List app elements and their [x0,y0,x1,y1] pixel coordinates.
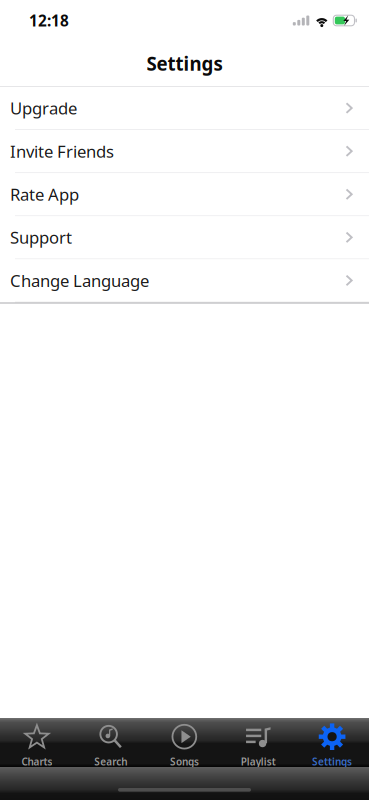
staticText: Invite Friends [10,140,114,162]
button[interactable]: Playlist [221,718,295,767]
staticText: Settings [312,755,352,768]
staticText: Songs [170,755,199,768]
button[interactable]: Search [74,718,148,767]
button[interactable]: Charts [0,718,74,767]
button[interactable]: Invite Friends [0,130,369,173]
staticText: Rate App [10,183,79,206]
staticText: Playlist [241,755,276,768]
button[interactable]: Settings [295,718,369,767]
staticText: Upgrade [10,97,77,119]
button[interactable]: Songs [148,718,221,767]
staticText: Settings [146,51,222,76]
button[interactable]: Support [0,216,369,259]
button[interactable]: Upgrade [0,87,369,130]
button[interactable]: Rate App [0,173,369,216]
staticText: Support [10,226,72,249]
staticText: Search [94,755,127,768]
staticText: Charts [21,755,52,768]
button[interactable]: Change Language [0,259,369,302]
staticText: Change Language [10,269,149,292]
staticText: 12:18 [29,10,69,31]
